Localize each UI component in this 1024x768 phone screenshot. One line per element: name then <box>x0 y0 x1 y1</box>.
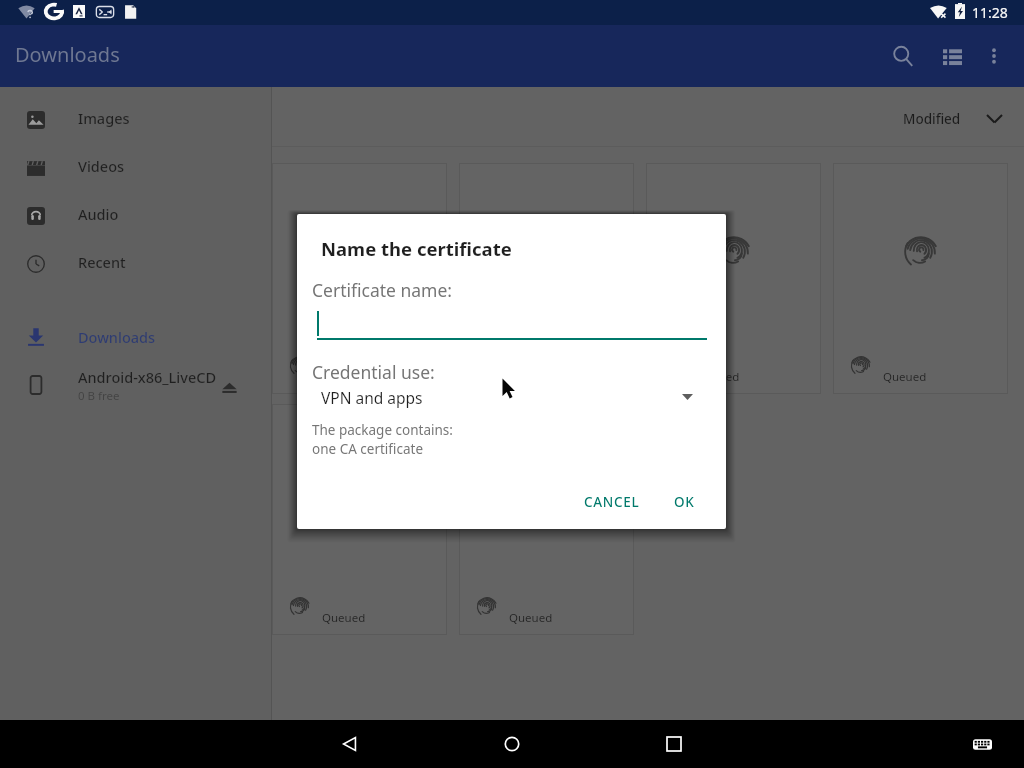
button[interactable]: Search <box>879 32 927 80</box>
button[interactable]: Images <box>0 96 271 144</box>
staticText: OK <box>674 493 695 511</box>
staticText: Images <box>78 108 130 128</box>
staticText: Recent <box>78 252 126 272</box>
button[interactable]: Queued download <box>459 163 634 394</box>
button[interactable]: Sort by Modified <box>876 95 1020 141</box>
button[interactable]: Recent <box>0 240 271 288</box>
button[interactable]: Downloads <box>0 313 271 361</box>
staticText: The package contains: <box>312 421 453 439</box>
button[interactable]: Videos <box>0 144 271 192</box>
staticText: CANCEL <box>584 493 640 511</box>
button[interactable]: Back <box>326 720 374 768</box>
button[interactable]: CANCEL <box>574 484 650 520</box>
button[interactable]: Queued download <box>272 163 447 394</box>
staticText: Queued <box>322 610 366 626</box>
staticText: 11:28 <box>972 3 1008 22</box>
button[interactable]: Queued download <box>646 163 821 394</box>
staticText: Credential use: <box>312 360 435 384</box>
staticText: Downloads <box>15 41 120 68</box>
staticText: Videos <box>78 156 125 176</box>
button[interactable]: More options <box>970 32 1018 80</box>
staticText: Name the certificate <box>321 236 512 261</box>
button[interactable]: Eject <box>213 371 245 403</box>
button[interactable]: OK <box>661 484 707 520</box>
button[interactable]: Credential use dropdown <box>305 382 717 412</box>
staticText: one CA certificate <box>312 440 423 458</box>
button[interactable]: Queued download <box>459 404 634 635</box>
staticText: Android-x86_LiveCD <box>78 367 217 387</box>
button[interactable]: Show keyboard <box>958 720 1006 768</box>
staticText: 0 B free <box>78 388 120 404</box>
button[interactable]: Home <box>488 720 536 768</box>
staticText: VPN and apps <box>321 387 423 408</box>
button[interactable]: Audio <box>0 192 271 240</box>
staticText: Audio <box>78 204 119 224</box>
button[interactable]: Queued download <box>272 404 447 635</box>
button[interactable]: Android-x86_LiveCD <box>0 357 271 413</box>
staticText: Certificate name: <box>312 278 453 302</box>
staticText: Queued <box>322 369 366 385</box>
staticText: Modified <box>903 110 961 128</box>
button[interactable]: List view <box>928 32 976 80</box>
staticText: Queued <box>696 369 740 385</box>
staticText: Downloads <box>78 327 156 347</box>
staticText: Queued <box>883 369 927 385</box>
staticText: Queued <box>509 610 553 626</box>
button[interactable]: Queued download <box>833 163 1008 394</box>
button[interactable]: Recents <box>650 720 698 768</box>
